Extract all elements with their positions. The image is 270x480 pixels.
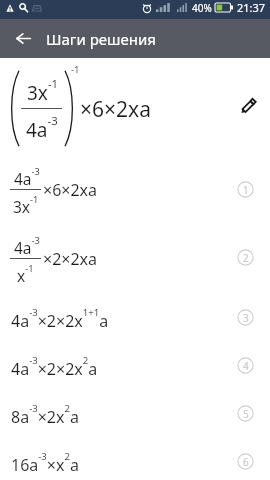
staticText: ×6×2xa [80,95,151,124]
staticText: 4a-3 [26,113,58,143]
staticText: 3 [243,311,249,325]
button[interactable]: 4a-3 [0,226,270,290]
staticText: 4a-3 [14,234,40,258]
staticText: 4 [243,359,249,373]
staticText: -1 [71,63,80,76]
staticText: 16a-3×x2a [11,450,79,475]
staticText: 6 [243,455,249,469]
button[interactable]: 8a-3×2x2a [0,391,270,437]
staticText: x-1 [17,262,34,286]
staticText: Шаги решения [46,29,156,49]
staticText: 3x-1 [27,76,59,106]
staticText: 21:37 [237,0,266,15]
staticText: 5 [243,407,249,421]
staticText: 3x-1 [13,193,39,217]
staticText: 4a-3×2×2x1+1a [11,306,109,331]
button[interactable]: Edit [230,87,266,123]
button[interactable]: 4a-3×2×2x2a [0,343,270,389]
staticText: 4a-3×2×2x2a [11,354,98,379]
staticText: 1 [243,183,249,197]
staticText: ×2×2xa [43,248,98,270]
button[interactable]: Back [0,19,46,58]
button[interactable]: 4a-3 [0,156,270,222]
staticText: 40% [192,1,212,15]
staticText: 8a-3×2x2a [11,402,79,427]
staticText: 4a-3 [14,165,40,189]
button[interactable]: 16a-3×x2a [0,439,270,480]
staticText: ×6×2xa [43,179,98,201]
staticText: 2 [243,251,249,265]
button[interactable]: 4a-3×2×2x1+1a [0,295,270,341]
